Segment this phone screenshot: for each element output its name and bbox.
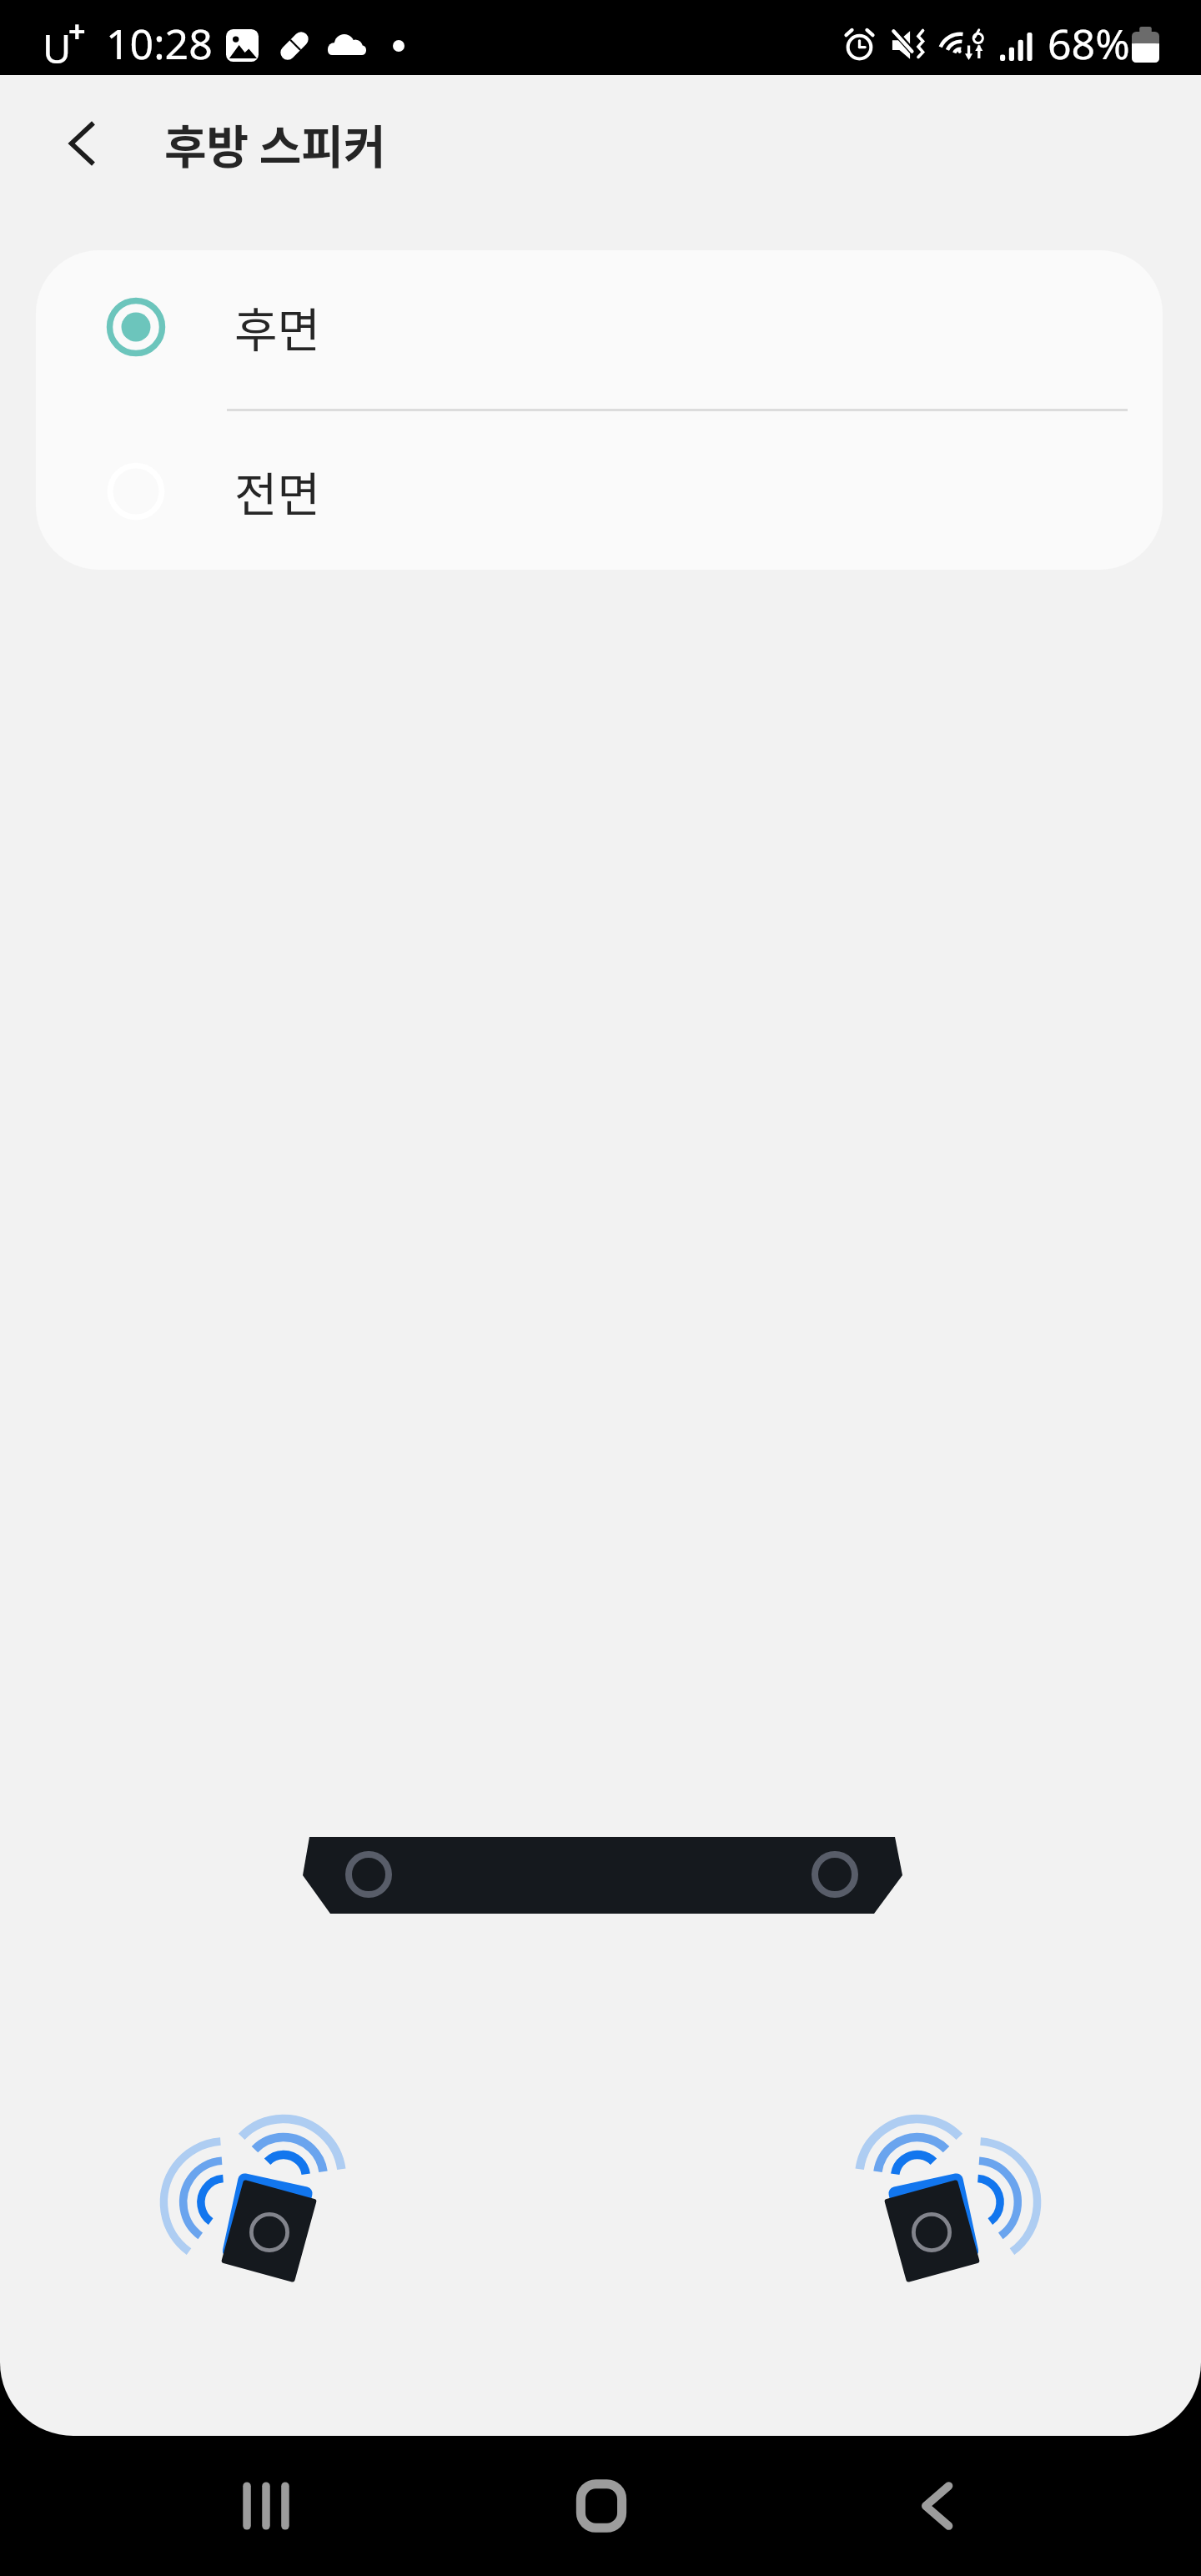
button[interactable]: Recents [208,2436,324,2576]
staticText: 68% [1048,15,1130,72]
staticText: 후면 [234,293,321,360]
button[interactable]: Back [43,105,120,182]
staticText: 후방 스피커 [164,110,386,177]
staticText: 10:28 [106,15,213,72]
staticText: + [68,11,86,52]
staticText: 전면 [234,457,321,525]
button[interactable]: 후면 [36,250,1163,406]
button[interactable]: Back [878,2436,995,2576]
button[interactable]: 전면 [36,411,1163,570]
button[interactable]: Home [543,2436,660,2576]
staticText: U [43,22,72,75]
